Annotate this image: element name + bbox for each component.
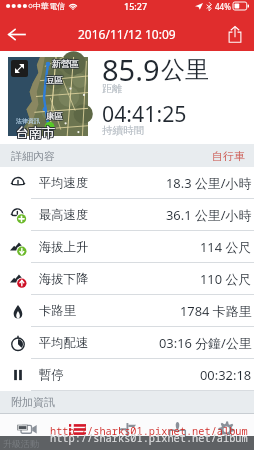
staticText: 康區 [45,111,62,122]
button[interactable]: Share [223,22,247,46]
staticText: 最高速度 [39,207,89,222]
staticText: 豆區 [45,76,62,87]
staticText: 海拔下降 [39,271,89,286]
staticText: 自行車 [212,149,245,163]
staticText: 升級活動 [3,438,39,449]
staticText: 海拔上升 [39,239,89,254]
staticText: 新營區 [51,58,78,69]
staticText: 18.3 公里/小時 [166,174,252,192]
staticText: 台南市 [15,123,54,139]
staticText: 44% [215,1,231,12]
staticText: 平均速度 [39,175,89,190]
staticText: 持續時間 [102,124,144,137]
staticText: 110 公尺 [200,270,252,288]
button[interactable]: 海拔上升 [0,231,254,263]
staticText: 平均配速 [39,335,89,350]
staticText: 法律資訊 [16,117,40,125]
staticText: 康區 [45,112,62,123]
staticText: 36.1 公里/小時 [166,206,252,224]
staticText: 豆區 [45,74,62,85]
staticText: 新營區 [53,57,80,68]
button[interactable]: Explore [155,414,199,450]
staticText: 康區 [46,110,63,121]
staticText: 豆區 [46,76,63,87]
button[interactable]: Map [8,57,88,136]
staticText: 康區 [46,111,63,122]
button[interactable]: 海拔下降 [0,263,254,295]
staticText: 暫停 [39,367,64,382]
staticText: 康區 [47,110,64,121]
staticText: 卡路里 [39,303,76,318]
staticText: 台南市 [17,124,56,140]
staticText: 豆區 [47,76,64,87]
button[interactable]: Activity list [55,414,99,450]
staticText: 中華電信 [33,1,65,11]
button[interactable]: 最高速度 [0,199,254,231]
button[interactable]: 卡路里 [0,295,254,327]
staticText: 台南市 [17,123,56,139]
staticText: 新營區 [53,58,80,69]
staticText: 台南市 [15,124,54,140]
staticText: http://sharks01.pixnet.net/album [50,424,248,438]
staticText: http://sharks01.pixnet.net/album [50,431,248,445]
staticText: 康區 [47,111,64,122]
staticText: 台南市 [17,125,56,141]
staticText: 2016/11/12 10:09 [78,26,176,42]
staticText: 03:16 分鐘/公里 [159,334,252,352]
staticText: 詳細內容 [11,149,55,163]
staticText: 1784 卡路里 [180,302,252,320]
staticText: 豆區 [46,74,63,85]
staticText: 豆區 [45,75,62,86]
staticText: 04:41:25 [102,99,187,128]
button[interactable]: 平均配速 [0,327,254,359]
staticText: 豆區 [47,75,64,86]
staticText: 附加資訊 [11,395,55,409]
staticText: 康區 [46,112,63,123]
staticText: 85.9 [102,50,160,89]
button[interactable]: Record video [6,414,50,450]
staticText: 新營區 [52,57,79,68]
staticText: 台南市 [16,124,55,140]
button[interactable]: 暫停 [0,359,254,391]
staticText: 康區 [45,110,62,121]
staticText: 台南市 [15,125,54,141]
staticText: 114 公尺 [200,238,252,256]
staticText: 康區 [47,112,64,123]
staticText: 豆區 [46,75,63,86]
staticText: 新營區 [51,57,78,68]
staticText: 豆區 [47,74,64,85]
button[interactable]: Routes [105,414,149,450]
staticText: 新營區 [52,59,79,70]
button[interactable]: Settings [204,414,248,450]
staticText: 15:27 [124,0,148,12]
staticText: 台南市 [16,123,55,139]
staticText: 新營區 [51,59,78,70]
staticText: 新營區 [52,58,79,69]
staticText: 新營區 [53,59,80,70]
staticText: 00:32:18 [200,366,252,384]
button[interactable]: 平均速度 [0,167,254,199]
staticText: 公里 [161,55,209,85]
staticText: 台南市 [16,125,55,141]
staticText: 距離 [102,82,122,95]
button[interactable]: Back [4,22,28,46]
